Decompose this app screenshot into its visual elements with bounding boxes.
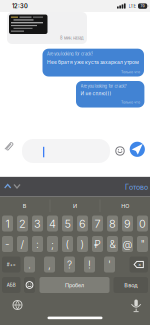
staticText: 8 <box>109 217 116 230</box>
button[interactable]: Эмодзи <box>0 0 150 325</box>
button[interactable]: Следующее поле <box>0 0 150 325</box>
button[interactable]: " <box>0 0 150 325</box>
staticText: ; <box>51 238 54 250</box>
staticText: : <box>36 238 39 250</box>
staticText: 2 <box>19 217 26 230</box>
button[interactable]: Поле сообщения <box>0 0 150 325</box>
button[interactable]: АБВ <box>0 0 150 325</box>
button[interactable]: Готово <box>0 0 150 325</box>
button[interactable]: Ввод <box>0 0 150 325</box>
staticText: / <box>20 238 24 250</box>
button[interactable]: Удалить <box>0 0 150 325</box>
staticText: 0 <box>139 217 146 230</box>
staticText: ) <box>80 238 84 250</box>
button[interactable]: ₽ <box>0 0 150 325</box>
button[interactable]: - <box>0 0 150 325</box>
staticText: 4 <box>49 217 56 230</box>
button[interactable]: В <box>0 0 150 325</box>
button[interactable]: 1 <box>0 0 150 325</box>
button[interactable]: & <box>0 0 150 325</box>
staticText: LTE <box>128 4 136 9</box>
staticText: Ввод <box>124 282 137 288</box>
staticText: " <box>140 238 144 250</box>
button[interactable]: #+= <box>0 0 150 325</box>
staticText: - <box>5 238 10 250</box>
button[interactable]: ; <box>0 0 150 325</box>
button[interactable]: 3 <box>0 0 150 325</box>
button[interactable]: 4 <box>0 0 150 325</box>
staticText: ₽ <box>94 238 101 250</box>
button[interactable]: Вложение, 8 мин. назад <box>0 0 150 325</box>
staticText: ' <box>108 259 111 271</box>
staticText: , <box>48 259 51 271</box>
button[interactable]: Эмодзи <box>0 0 150 325</box>
staticText: АБВ <box>7 282 16 288</box>
staticText: @ <box>122 238 132 250</box>
staticText: И <box>73 203 77 209</box>
button[interactable]: Пробел <box>0 0 150 325</box>
staticText: ? <box>67 259 72 271</box>
staticText: ! <box>88 259 91 271</box>
staticText: . <box>28 259 31 271</box>
staticText: & <box>109 238 115 250</box>
staticText: НО <box>121 203 129 209</box>
button[interactable]: ' <box>0 0 150 325</box>
staticText: 1 <box>5 217 9 230</box>
staticText: × <box>138 261 141 267</box>
button[interactable]: 9 <box>0 0 150 325</box>
button[interactable]: @ <box>0 0 150 325</box>
button[interactable]: / <box>0 0 150 325</box>
button[interactable]: ? <box>0 0 150 325</box>
staticText: 12:30 <box>12 3 28 10</box>
staticText: В <box>23 203 27 209</box>
button[interactable]: И <box>0 0 150 325</box>
button[interactable]: НО <box>0 0 150 325</box>
staticText: И не сплю))) <box>80 91 111 96</box>
staticText: Готово <box>125 183 148 191</box>
staticText: 3 <box>34 217 41 230</box>
staticText: 7 <box>94 217 100 230</box>
button[interactable]: 2 <box>0 0 150 325</box>
staticText: 8 мин. назад <box>60 35 84 40</box>
staticText: ( <box>65 238 69 250</box>
button[interactable]: : <box>0 0 150 325</box>
staticText: Пробел <box>65 282 84 288</box>
button[interactable]: Прикрепить файл <box>0 0 150 325</box>
staticText: Только что <box>121 100 140 104</box>
button[interactable]: , <box>0 0 150 325</box>
button[interactable]: 7 <box>0 0 150 325</box>
button[interactable]: ( <box>0 0 150 325</box>
button[interactable]: . <box>0 0 150 325</box>
staticText: Только что <box>121 70 140 74</box>
button[interactable]: 8 <box>0 0 150 325</box>
button[interactable]: Диктовка <box>0 0 150 325</box>
staticText: 5 <box>64 217 70 230</box>
staticText: Are you looking for crack? <box>47 51 93 56</box>
staticText: 70 <box>141 4 145 8</box>
staticText: #+= <box>7 262 16 267</box>
button[interactable]: Предыдущее поле <box>0 0 150 325</box>
staticText: Нее брат я уже куста захаркал утром <box>47 59 139 65</box>
button[interactable]: Сменить язык <box>0 0 150 325</box>
button[interactable]: 5 <box>0 0 150 325</box>
staticText: 9 <box>124 217 131 230</box>
button[interactable]: Отправить <box>0 0 150 325</box>
button[interactable]: ! <box>0 0 150 325</box>
staticText: 6 <box>79 217 86 230</box>
staticText: Are you looking for crack? <box>80 84 126 89</box>
button[interactable]: 0 <box>0 0 150 325</box>
button[interactable]: 6 <box>0 0 150 325</box>
button[interactable]: ) <box>0 0 150 325</box>
